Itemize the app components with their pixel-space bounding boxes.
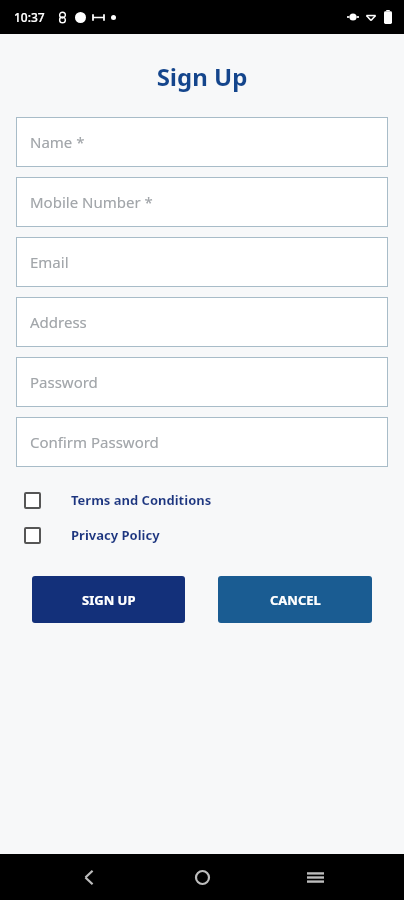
button[interactable]: Password xyxy=(16,357,388,407)
staticText: SIGN UP xyxy=(82,591,136,609)
staticText: 10:37 xyxy=(14,9,45,25)
staticText: Mobile Number * xyxy=(30,192,153,212)
staticText: CANCEL xyxy=(270,591,321,609)
button[interactable]: Address xyxy=(16,297,388,347)
button[interactable]: Back xyxy=(65,854,113,900)
button[interactable]: CANCEL xyxy=(218,576,372,623)
button[interactable]: Privacy Policy xyxy=(0,520,404,550)
button[interactable]: SIGN UP xyxy=(32,576,185,623)
button[interactable]: Name * xyxy=(16,117,388,167)
staticText: Privacy Policy xyxy=(71,526,160,544)
button[interactable]: Terms and Conditions xyxy=(0,485,404,515)
staticText: Email xyxy=(30,252,69,272)
button[interactable]: Confirm Password xyxy=(16,417,388,467)
button[interactable]: Email xyxy=(16,237,388,287)
staticText: Password xyxy=(30,372,98,392)
staticText: Confirm Password xyxy=(30,432,159,452)
button[interactable]: Home xyxy=(178,854,226,900)
button[interactable]: Mobile Number * xyxy=(16,177,388,227)
staticText: Name * xyxy=(30,132,85,152)
button[interactable]: Recent apps xyxy=(291,854,339,900)
staticText: Address xyxy=(30,312,87,332)
staticText: Sign Up xyxy=(0,60,404,93)
staticText: Terms and Conditions xyxy=(71,491,212,509)
